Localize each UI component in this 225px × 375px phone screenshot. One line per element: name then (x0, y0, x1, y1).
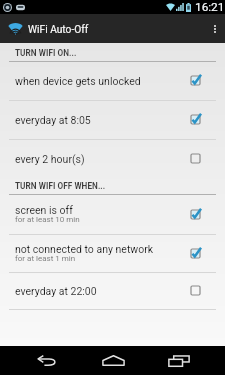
button[interactable]: everyday at 8:05 (0, 100, 225, 139)
button[interactable]: Back (21, 346, 71, 375)
staticText: everyday at 22:00 (15, 285, 97, 297)
staticText: not connected to any network (15, 243, 154, 255)
staticText: when device gets unlocked (15, 75, 141, 87)
button[interactable]: not connected to any network (0, 234, 225, 272)
button[interactable]: Home (88, 346, 138, 375)
button[interactable]: screen is off (0, 194, 225, 234)
staticText: for at least 10 min (15, 215, 80, 224)
staticText: for at least 1 min (15, 254, 76, 263)
staticText: WiFi Auto-Off (28, 24, 89, 36)
button[interactable]: when device gets unlocked (0, 61, 225, 100)
staticText: screen is off (15, 204, 73, 216)
staticText: TURN WIFI OFF WHEN... (15, 181, 106, 191)
staticText: everyday at 8:05 (15, 114, 91, 126)
staticText: TURN WIFI ON... (15, 48, 77, 58)
button[interactable]: every 2 hour(s) (0, 139, 225, 178)
button[interactable]: everyday at 22:00 (0, 272, 225, 309)
button[interactable]: Recent apps (154, 346, 204, 375)
staticText: every 2 hour(s) (15, 153, 85, 165)
button[interactable]: More options (205, 14, 225, 43)
staticText: 16:21 (195, 0, 225, 14)
